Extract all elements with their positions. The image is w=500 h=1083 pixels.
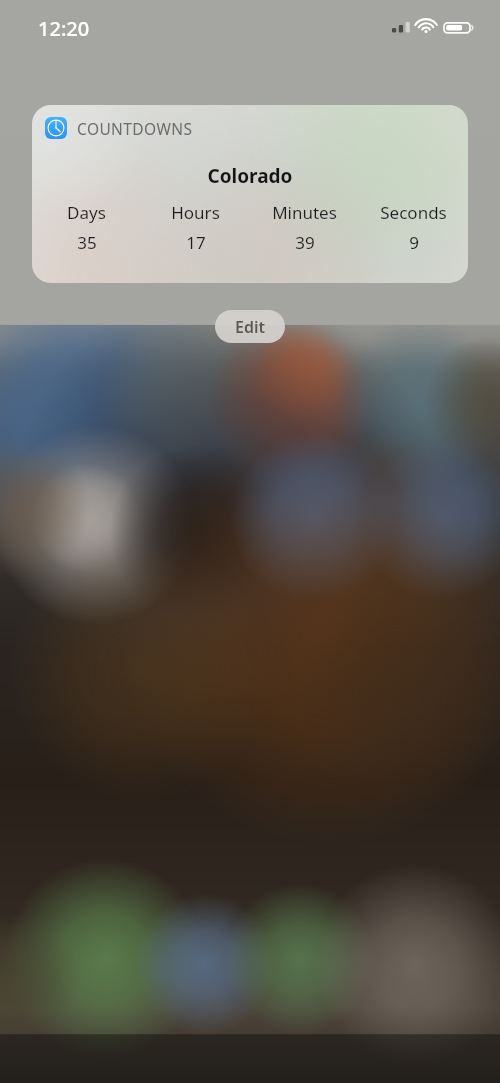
staticText: Seconds <box>380 201 447 224</box>
staticText: 17 <box>186 231 206 254</box>
staticText: COUNTDOWNS <box>77 118 193 139</box>
staticText: Hours <box>171 201 220 224</box>
button[interactable]: COUNTDOWNS <box>32 105 468 283</box>
button[interactable]: Edit widgets <box>215 310 285 343</box>
staticText: Minutes <box>272 201 337 224</box>
staticText: Colorado <box>32 163 468 189</box>
staticText: 12:20 <box>38 15 90 42</box>
staticText: Days <box>67 201 106 224</box>
staticText: 9 <box>409 231 419 254</box>
staticText: 39 <box>295 231 315 254</box>
staticText: Edit <box>235 316 265 338</box>
staticText: 35 <box>77 231 97 254</box>
